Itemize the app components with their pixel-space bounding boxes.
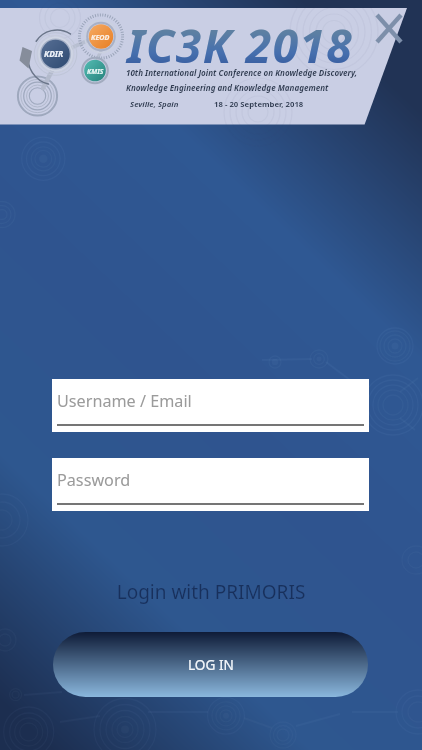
staticText: Password bbox=[57, 469, 131, 491]
staticText: IC3K 2018 bbox=[127, 14, 354, 77]
staticText: Knowledge Engineering and Knowledge Mana… bbox=[126, 82, 329, 93]
button[interactable]: Close bbox=[377, 15, 401, 42]
staticText: KMIS bbox=[87, 67, 104, 76]
staticText: 18 - 20 September, 2018 bbox=[214, 99, 304, 110]
staticText: LOG IN bbox=[188, 655, 234, 674]
staticText: KEOD bbox=[91, 32, 110, 42]
button[interactable]: Password bbox=[52, 458, 369, 511]
staticText: Seville, Spain bbox=[130, 99, 179, 110]
button[interactable]: Username / Email bbox=[52, 379, 369, 432]
staticText: Login with PRIMORIS bbox=[0, 579, 422, 605]
staticText: 10th International Joint Conference on K… bbox=[126, 67, 358, 78]
staticText: KDIR bbox=[44, 48, 64, 59]
button[interactable]: LOG IN bbox=[53, 632, 368, 697]
staticText: Username / Email bbox=[57, 390, 192, 412]
